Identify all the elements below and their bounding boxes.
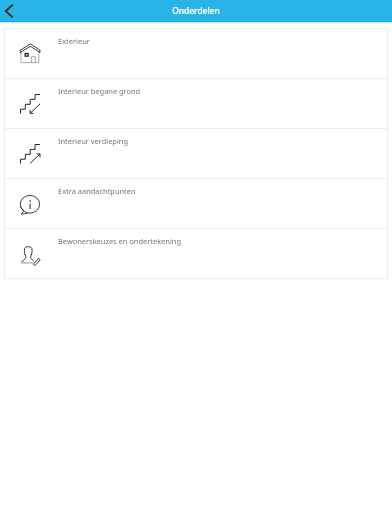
button[interactable]: Bewonerskeuzes en ondertekening (4, 229, 388, 278)
button[interactable]: Interieur begane grond (4, 79, 388, 128)
staticText: Interieur begane grond (58, 86, 141, 96)
staticText: Interieur verdieping (58, 136, 129, 146)
staticText: Extra aandachtpunten (58, 186, 136, 196)
button[interactable]: Extra aandachtpunten (4, 179, 388, 228)
staticText: Bewonerskeuzes en ondertekening (58, 236, 181, 246)
button[interactable]: Exterieur (4, 29, 388, 78)
staticText: Onderdelen (172, 5, 220, 16)
button[interactable]: Interieur verdieping (4, 129, 388, 178)
button[interactable]: Back (0, 0, 22, 21)
staticText: Exterieur (58, 36, 90, 46)
